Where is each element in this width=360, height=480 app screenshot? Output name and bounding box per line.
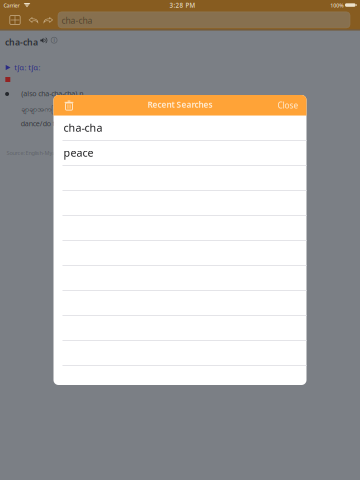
button[interactable]: cha-cha [53, 115, 306, 140]
staticText: Carrier [4, 2, 20, 9]
button[interactable]: Close [270, 95, 306, 115]
button[interactable]: Back [26, 11, 40, 29]
staticText: cha-cha [5, 36, 38, 48]
staticText: 100% [330, 2, 343, 9]
staticText: cha-cha [61, 14, 92, 26]
button[interactable]: Forward [41, 11, 55, 29]
staticText: cha-cha [64, 120, 103, 135]
button[interactable]: peace [53, 140, 306, 165]
staticText: dance/do the cha-cha [21, 119, 90, 128]
staticText: tʃɑː tʃɑː [14, 62, 40, 73]
staticText: i [54, 37, 55, 43]
button[interactable]: Clear recent searches [58, 95, 80, 115]
staticText: Source: English-Myanmar Dictionary [6, 149, 94, 157]
staticText: Close [277, 100, 298, 111]
button[interactable]: Search [58, 12, 350, 28]
staticText: Recent Searches [147, 99, 212, 110]
staticText: peace [64, 145, 94, 160]
staticText: 3:28 PM [169, 1, 195, 10]
button[interactable]: Library [4, 11, 26, 29]
staticText: ချာချာအကပြသည် [21, 104, 71, 115]
staticText: (also cha-cha-cha) n. [21, 89, 85, 98]
